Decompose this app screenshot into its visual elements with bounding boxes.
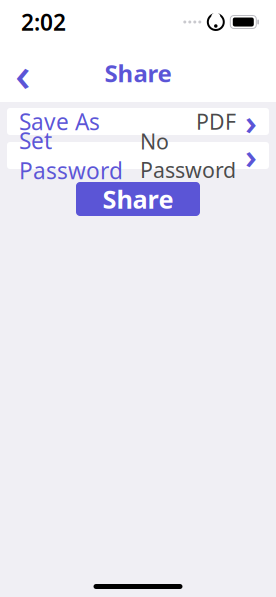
staticText: Share: [102, 182, 173, 216]
staticText: Save As: [19, 106, 100, 136]
staticText: ›: [245, 132, 257, 178]
staticText: ‹: [15, 41, 31, 105]
button[interactable]: Save As: [0, 108, 276, 135]
staticText: PDF: [196, 107, 236, 136]
button[interactable]: Back: [2, 52, 44, 94]
staticText: Set Password: [19, 125, 123, 186]
button[interactable]: Share: [76, 182, 200, 216]
staticText: No Password: [140, 127, 236, 184]
staticText: ›: [245, 98, 257, 144]
staticText: Share: [104, 57, 171, 89]
button[interactable]: Set Password: [0, 142, 276, 169]
staticText: 2:02: [21, 7, 66, 37]
